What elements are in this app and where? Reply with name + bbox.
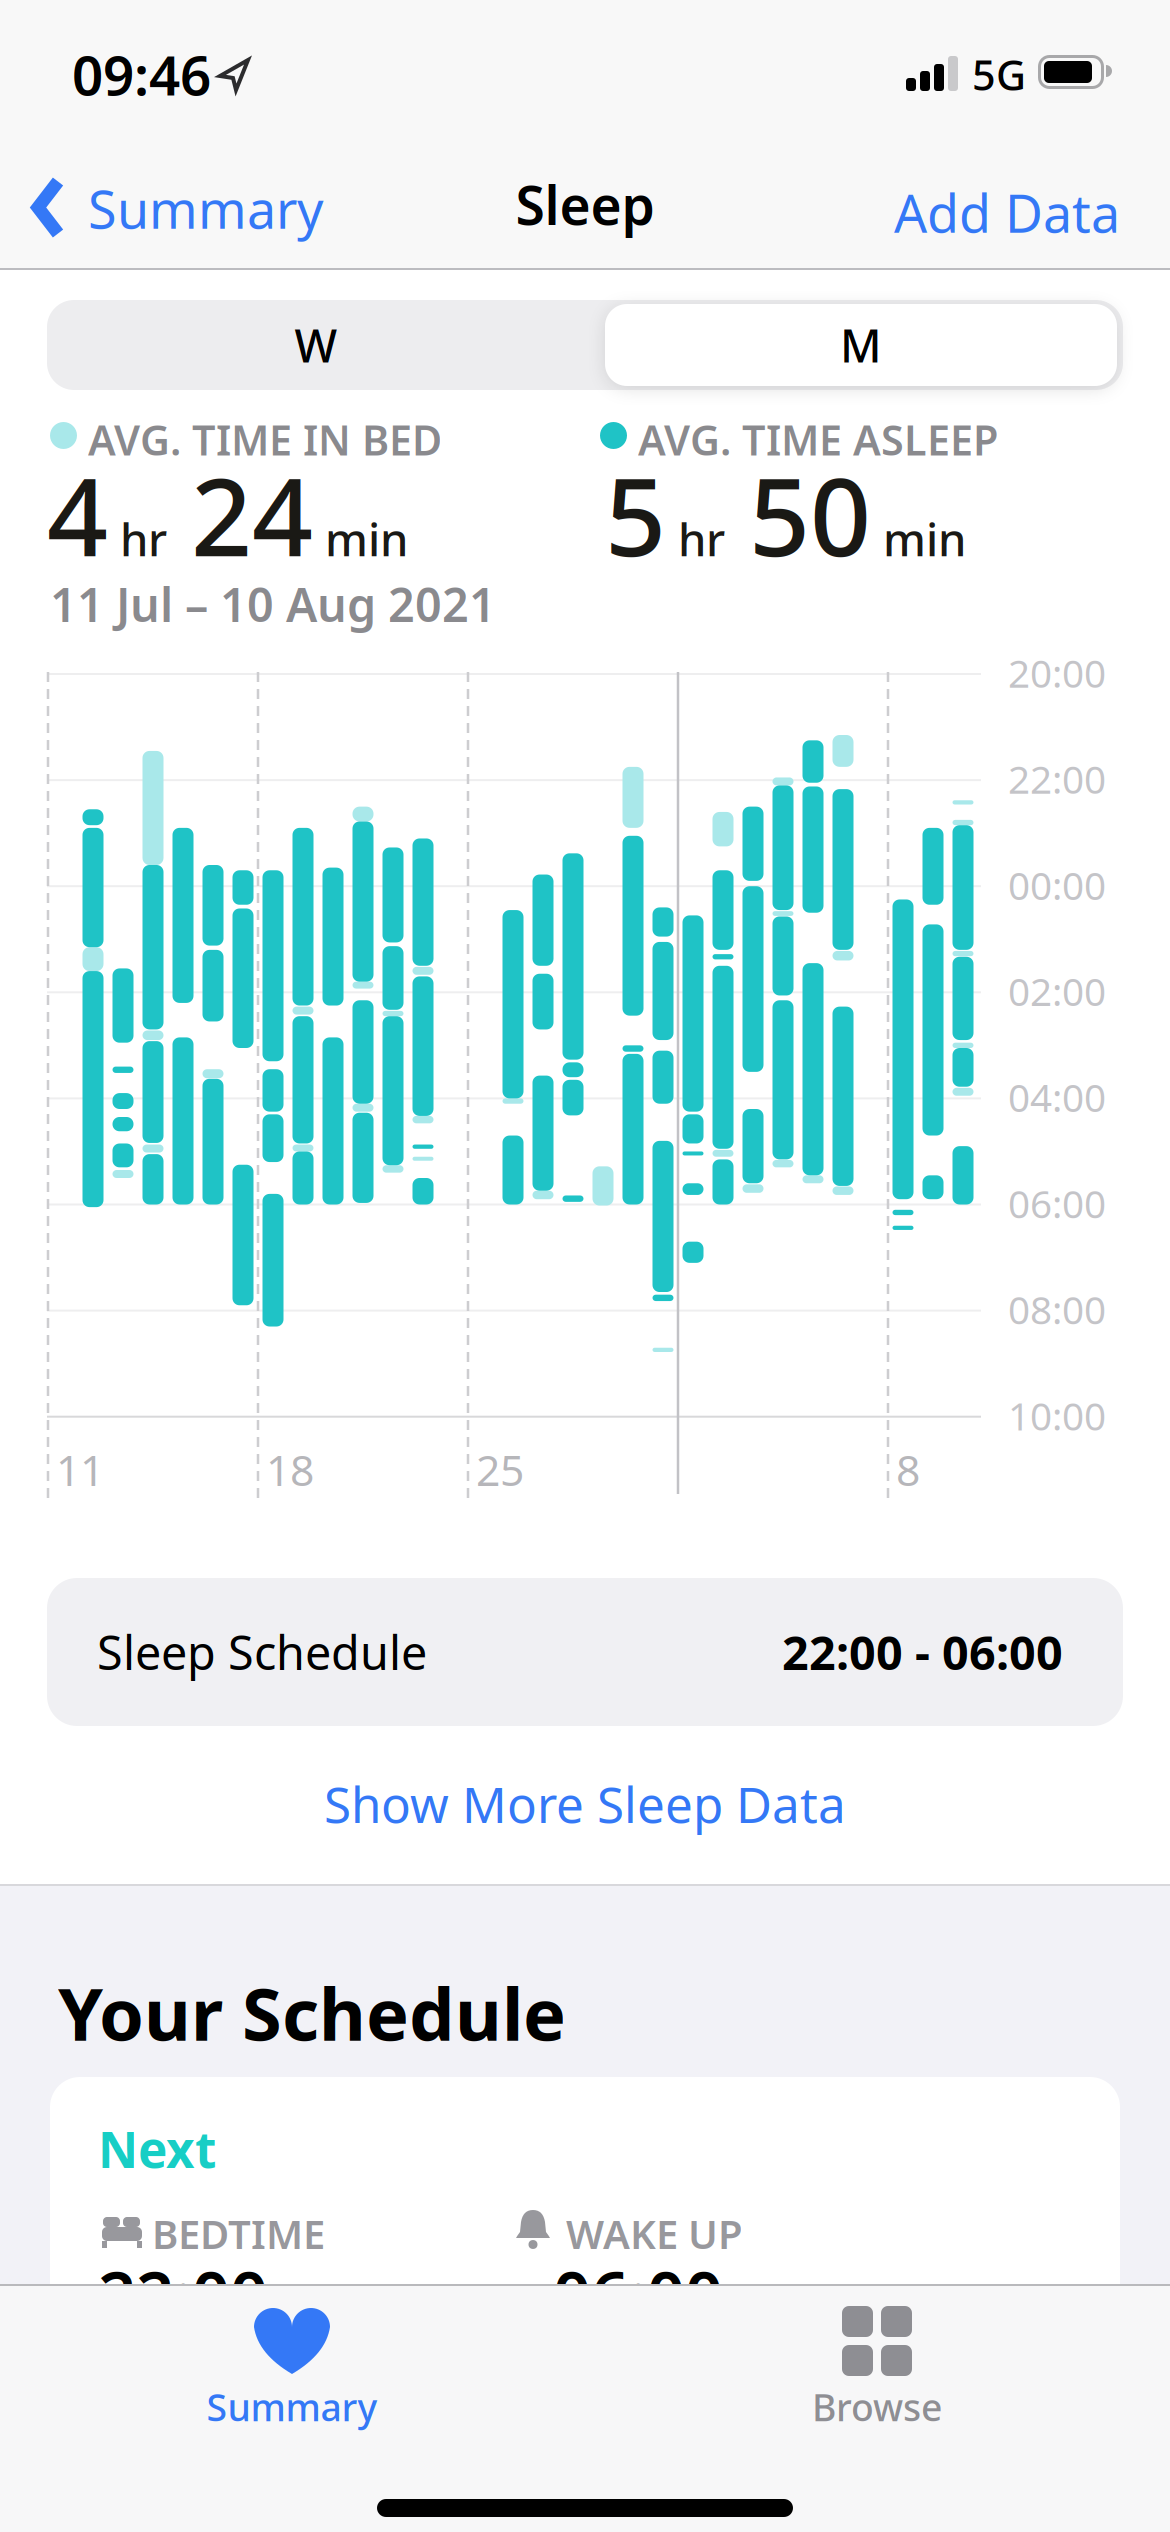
staticText: 22:00 - 06:00	[782, 1621, 1063, 1683]
staticText: 5 hr 50 min	[605, 444, 966, 586]
staticText: 08:00	[1008, 1284, 1106, 1335]
staticText: 09:46	[72, 38, 211, 111]
staticText: 18	[266, 1441, 314, 1498]
staticText: Your Schedule	[58, 1965, 566, 2061]
staticText: 4 hr 24 min	[47, 444, 408, 586]
staticText: WAKE UP	[566, 2207, 743, 2260]
button[interactable]: Summary	[142, 2306, 442, 2432]
button[interactable]: Sleep Schedule	[47, 1578, 1123, 1726]
staticText: AVG. TIME IN BED	[88, 412, 442, 467]
staticText: 25	[476, 1441, 524, 1498]
button[interactable]: W	[47, 300, 585, 390]
staticText: Summary	[206, 2382, 377, 2432]
button[interactable]: M	[605, 304, 1117, 386]
button[interactable]: Next	[50, 2077, 1120, 2517]
staticText: Sleep Schedule	[97, 1621, 427, 1683]
staticText: Add Data	[894, 178, 1120, 247]
staticText: 10:00	[1008, 1390, 1106, 1441]
staticText: 06:00	[1008, 1177, 1106, 1229]
button[interactable]: Browse	[727, 2306, 1027, 2432]
staticText: 04:00	[1008, 1071, 1106, 1123]
staticText: Next	[98, 2116, 216, 2181]
staticText: 02:00	[1008, 965, 1106, 1017]
staticText: 22:00	[98, 2250, 268, 2338]
staticText: 06:00	[553, 2250, 723, 2338]
button[interactable]: Show More Sleep Data	[0, 1771, 1170, 1836]
staticText: Browse	[812, 2382, 942, 2432]
staticText: 22:00	[1008, 753, 1106, 804]
staticText: 5G	[972, 47, 1026, 102]
button[interactable]: Summary	[34, 174, 324, 243]
staticText: Summary	[88, 174, 324, 243]
staticText: Sleep	[515, 169, 654, 240]
button[interactable]: Add Data	[840, 178, 1120, 247]
staticText: M	[840, 315, 882, 375]
staticText: W	[294, 315, 337, 375]
staticText: 8	[896, 1441, 920, 1498]
staticText: Show More Sleep Data	[324, 1771, 846, 1836]
staticText: 11 Jul – 10 Aug 2021	[50, 573, 496, 635]
staticText: AVG. TIME ASLEEP	[638, 412, 998, 467]
staticText: BEDTIME	[152, 2207, 325, 2260]
staticText: 11	[56, 1441, 104, 1498]
staticText: 20:00	[1008, 647, 1106, 698]
staticText: 00:00	[1008, 859, 1106, 910]
